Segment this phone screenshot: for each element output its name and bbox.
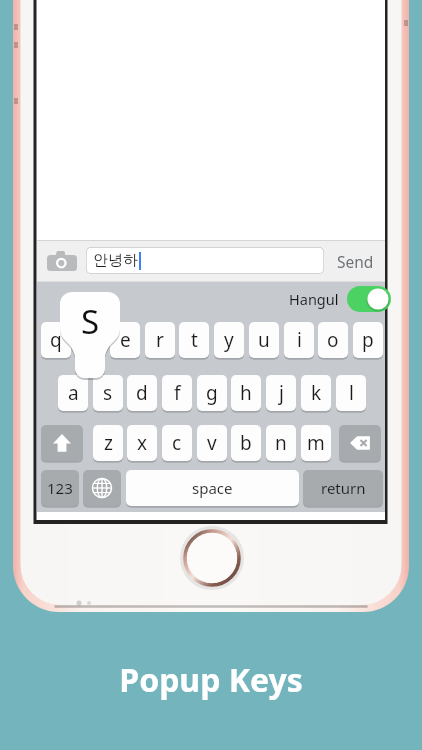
staticText: return <box>321 478 366 498</box>
button[interactable]: Camera <box>46 249 80 274</box>
button[interactable]: u <box>249 322 279 358</box>
button[interactable]: Delete <box>339 425 381 461</box>
button[interactable]: Shift <box>41 425 83 461</box>
staticText: e <box>120 327 131 353</box>
staticText: f <box>174 380 181 406</box>
button[interactable]: v <box>197 425 227 461</box>
button[interactable]: h <box>231 375 261 411</box>
staticText: p <box>362 327 374 353</box>
button[interactable]: 안녕하 <box>86 247 324 274</box>
button[interactable]: z <box>93 425 123 461</box>
staticText: 안녕하 <box>93 251 138 270</box>
staticText: d <box>136 380 148 406</box>
staticText: n <box>275 430 287 456</box>
staticText: 123 <box>47 478 73 498</box>
staticText: a <box>68 380 79 406</box>
button[interactable]: c <box>162 425 192 461</box>
button[interactable]: w <box>75 322 105 358</box>
button[interactable]: Switch keyboard <box>83 470 121 506</box>
staticText: t <box>191 327 198 353</box>
button[interactable]: b <box>231 425 261 461</box>
button[interactable]: d <box>127 375 157 411</box>
staticText: g <box>206 380 218 406</box>
staticText: x <box>137 430 148 456</box>
staticText: i <box>297 327 302 353</box>
button[interactable]: e <box>110 322 140 358</box>
staticText: s <box>103 380 113 406</box>
button[interactable]: 123 <box>41 470 79 506</box>
staticText: l <box>349 380 354 406</box>
staticText: h <box>240 380 252 406</box>
button[interactable]: x <box>127 425 157 461</box>
button[interactable]: r <box>145 322 175 358</box>
button[interactable]: p <box>353 322 383 358</box>
staticText: w <box>83 327 98 353</box>
staticText: c <box>172 430 182 456</box>
button[interactable]: Hangul <box>289 285 391 312</box>
button[interactable]: a <box>58 375 88 411</box>
button[interactable]: space <box>126 470 299 506</box>
staticText: v <box>207 430 217 456</box>
button[interactable]: l <box>336 375 366 411</box>
button[interactable]: Send <box>329 240 381 282</box>
button[interactable]: y <box>214 322 244 358</box>
button[interactable]: q <box>41 322 71 358</box>
button[interactable]: n <box>266 425 296 461</box>
staticText: q <box>50 327 62 353</box>
button[interactable]: s <box>93 375 123 411</box>
staticText: j <box>279 380 284 406</box>
button[interactable]: g <box>197 375 227 411</box>
staticText: Popup Keys <box>0 658 422 702</box>
staticText: b <box>240 430 252 456</box>
staticText: space <box>192 478 233 498</box>
staticText: z <box>104 430 113 456</box>
button[interactable]: t <box>179 322 209 358</box>
button[interactable]: m <box>301 425 331 461</box>
staticText: m <box>307 430 325 456</box>
button[interactable]: o <box>318 322 348 358</box>
staticText: S <box>81 299 100 344</box>
staticText: Send <box>337 251 374 272</box>
button[interactable]: S <box>60 292 120 378</box>
button[interactable]: return <box>303 470 383 506</box>
staticText: Hangul <box>289 289 339 309</box>
button[interactable]: k <box>301 375 331 411</box>
button[interactable]: f <box>162 375 192 411</box>
staticText: o <box>327 327 339 353</box>
staticText: r <box>156 327 164 353</box>
button[interactable]: i <box>284 322 314 358</box>
staticText: k <box>311 380 322 406</box>
staticText: u <box>258 327 270 353</box>
button[interactable]: j <box>266 375 296 411</box>
staticText: y <box>224 327 234 353</box>
